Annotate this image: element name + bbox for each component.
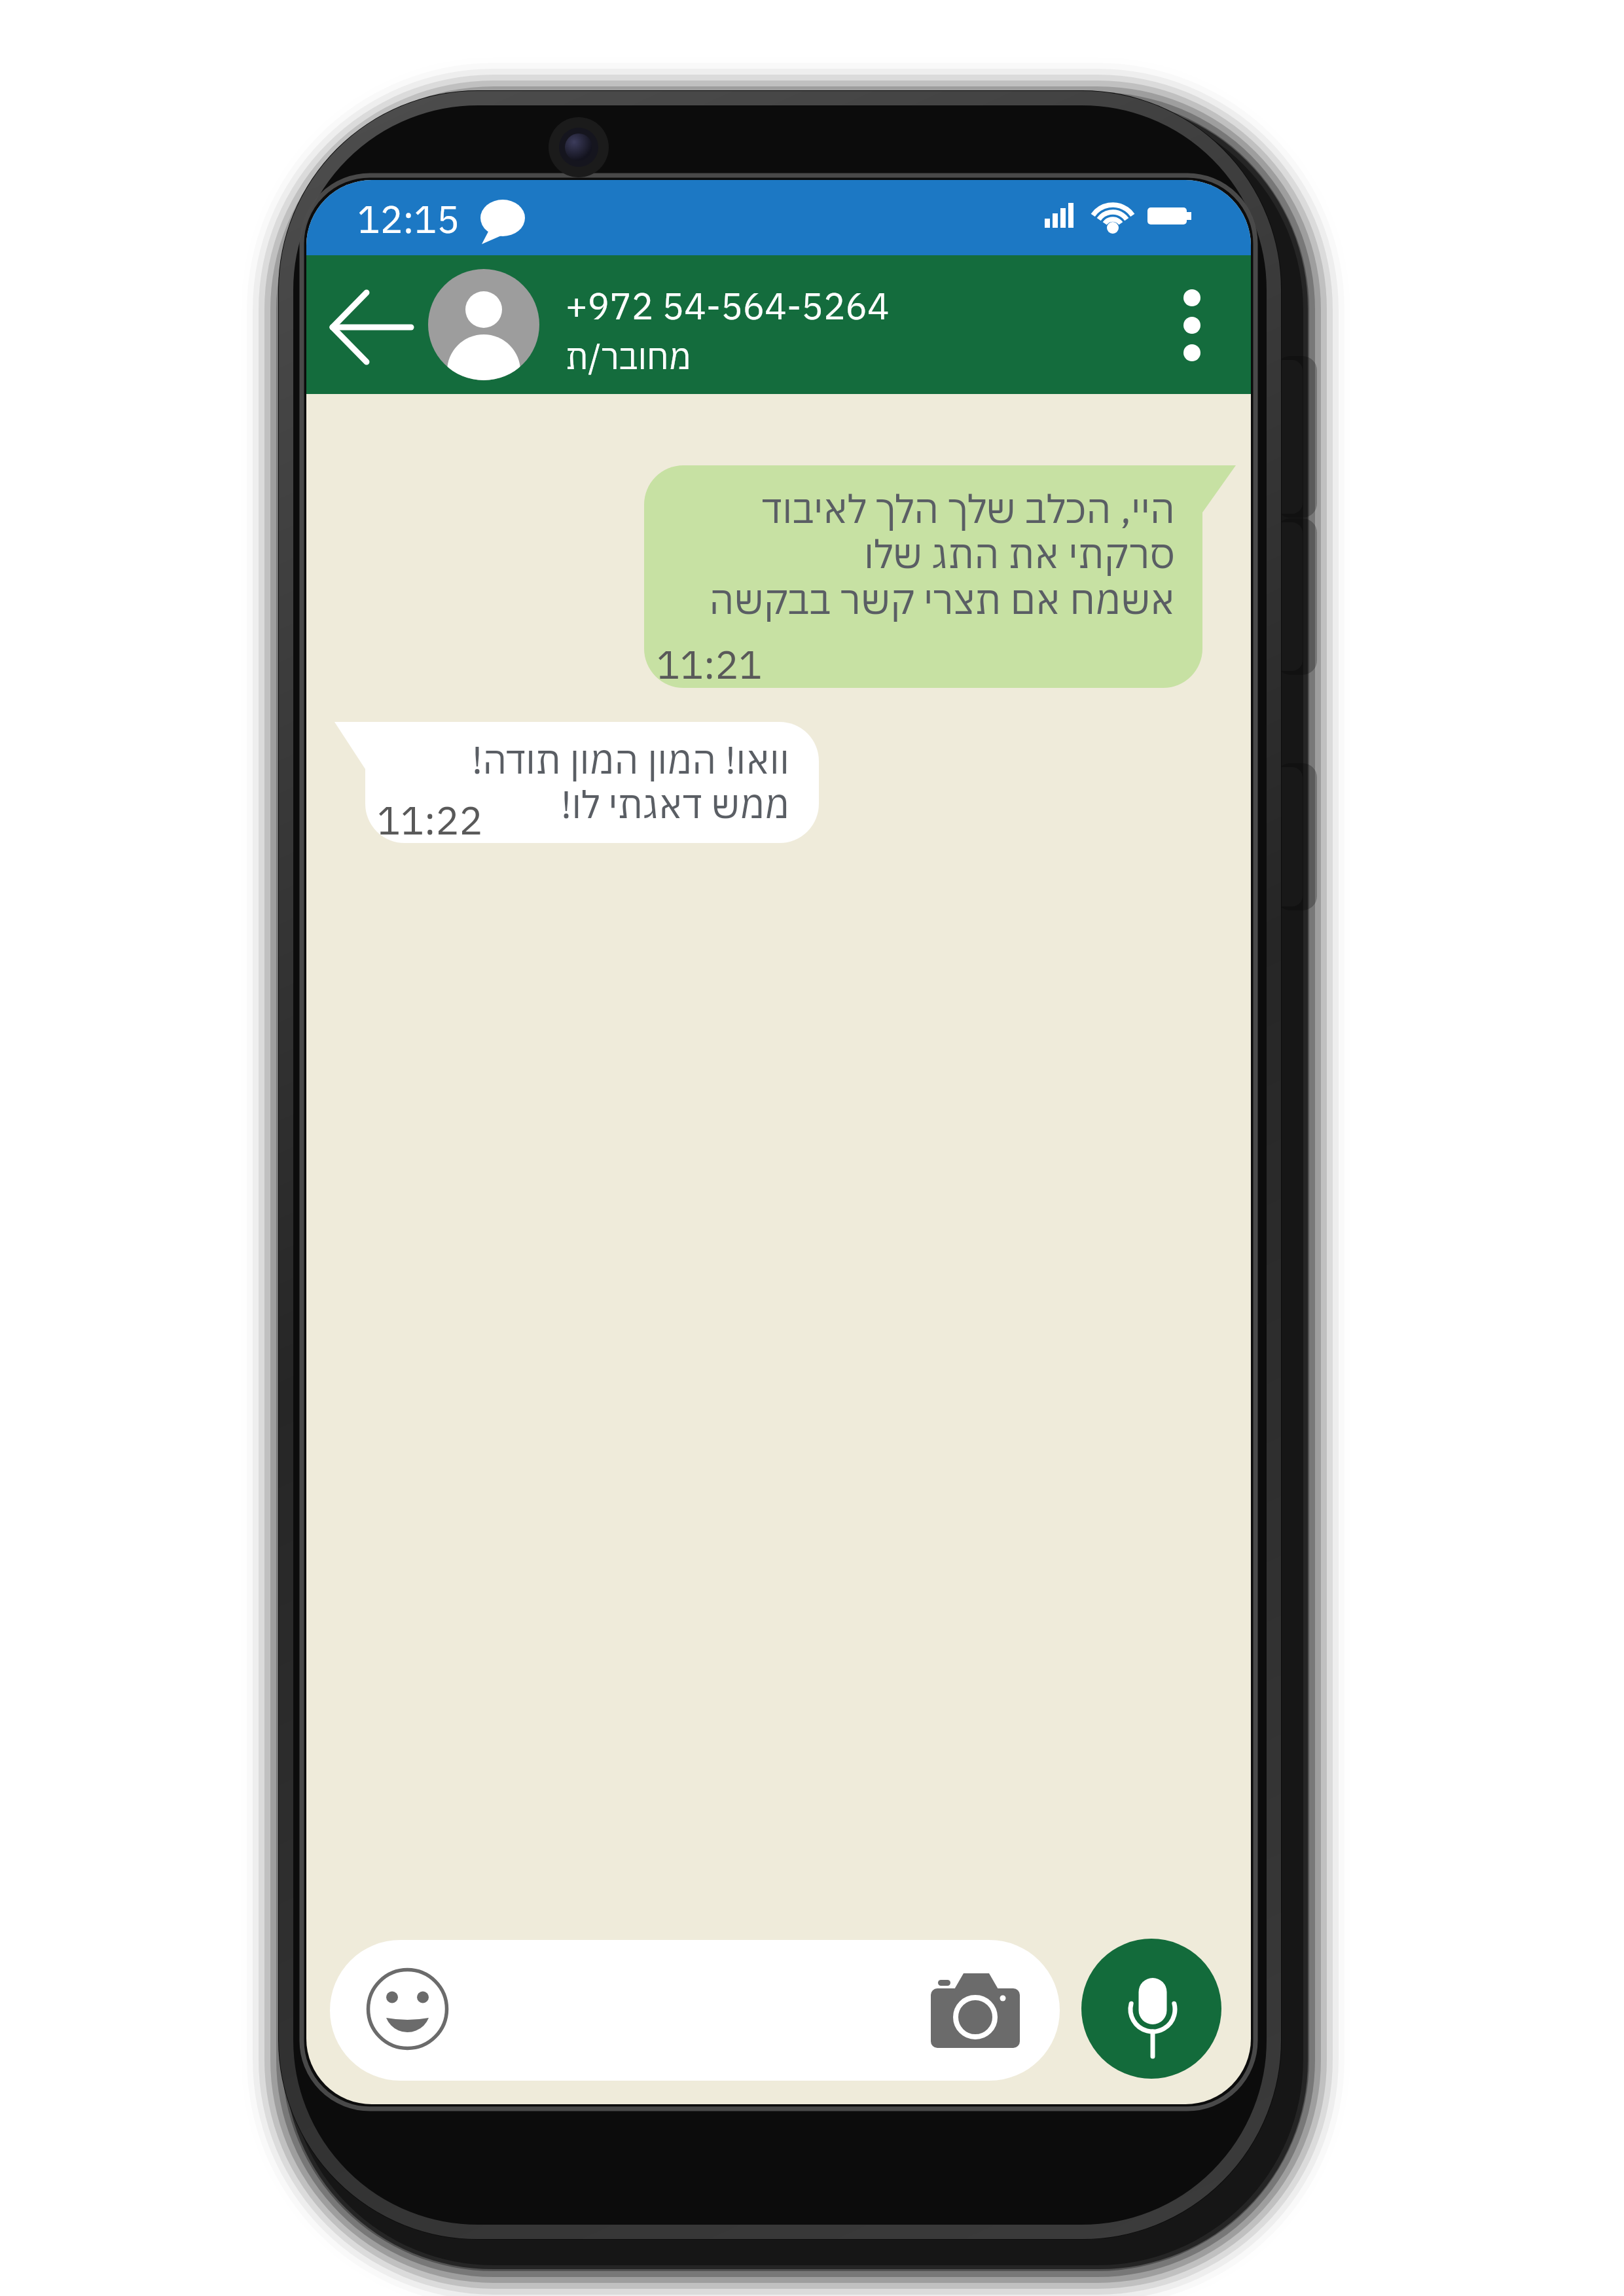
button[interactable]	[1081, 1939, 1221, 2079]
button[interactable]	[330, 1940, 1060, 2081]
staticText: 12:15	[357, 194, 460, 243]
button[interactable]	[922, 1954, 1030, 2058]
button[interactable]	[319, 288, 424, 367]
button[interactable]	[365, 722, 819, 843]
button[interactable]	[644, 465, 1202, 688]
button[interactable]	[1157, 276, 1229, 374]
button[interactable]: +972 54-564-5264	[566, 272, 1024, 389]
button[interactable]	[365, 1969, 449, 2053]
staticText: וואו! המון המון תודה! ממש דאגתי לו!	[398, 735, 789, 2104]
button[interactable]	[428, 269, 539, 380]
staticText: 11:21	[657, 638, 763, 689]
staticText: מחובר/ת	[566, 334, 691, 379]
staticText: +972 54-564-5264	[566, 282, 890, 330]
staticText: 11:22	[377, 794, 483, 845]
staticText: היי, הכלב שלך הלך לאיבוד סרקתי את התג של…	[653, 482, 1175, 2104]
